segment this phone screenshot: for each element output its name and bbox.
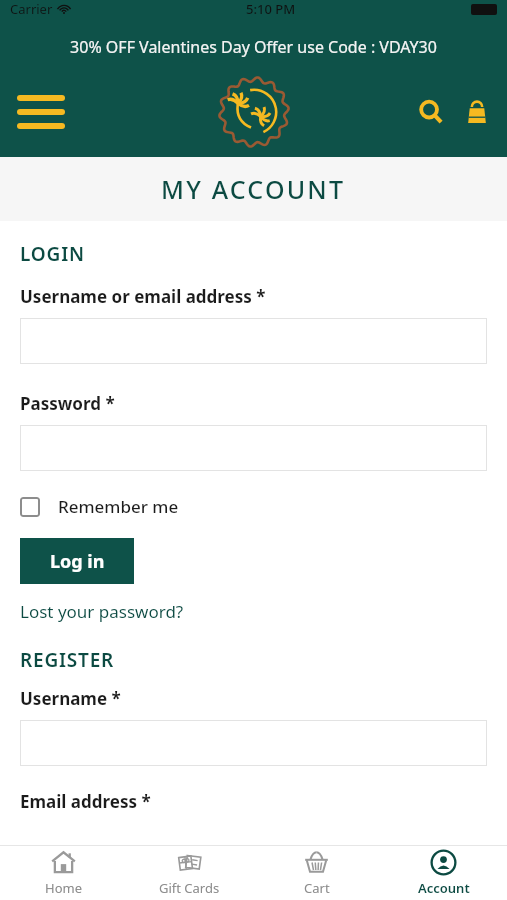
staticText: Carrier xyxy=(10,0,53,18)
staticText: REGISTER xyxy=(20,647,115,673)
button[interactable]: Remember me xyxy=(20,495,179,518)
button[interactable]: Gift Cards xyxy=(126,849,253,897)
staticText: Email address * xyxy=(20,790,151,813)
staticText: Gift Cards xyxy=(159,879,220,897)
button[interactable]: Account xyxy=(380,849,507,897)
staticText: MY ACCOUNT xyxy=(161,172,346,206)
staticText: Password * xyxy=(20,392,115,415)
button[interactable]: Home xyxy=(0,849,126,897)
button[interactable]: Home logo xyxy=(216,74,292,150)
button[interactable]: Log in xyxy=(20,538,134,584)
staticText: 30% OFF Valentines Day Offer use Code : … xyxy=(70,36,437,58)
button[interactable]: Cart xyxy=(253,849,380,897)
staticText: LOGIN xyxy=(20,241,85,267)
button[interactable] xyxy=(20,318,487,364)
staticText: Username or email address * xyxy=(20,285,266,308)
button[interactable]: Menu xyxy=(14,85,68,139)
button[interactable]: Search xyxy=(413,94,449,130)
staticText: Username * xyxy=(20,687,121,710)
staticText: Home xyxy=(45,879,82,897)
staticText: 5:10 PM xyxy=(246,0,296,18)
button[interactable] xyxy=(20,720,487,766)
staticText: Log in xyxy=(50,549,105,574)
button[interactable]: Lost your password? xyxy=(20,600,184,623)
button[interactable] xyxy=(20,425,487,471)
staticText: Account xyxy=(418,879,470,897)
staticText: Remember me xyxy=(58,495,179,518)
button[interactable]: Shopping bag xyxy=(459,94,495,130)
staticText: Cart xyxy=(304,879,330,897)
